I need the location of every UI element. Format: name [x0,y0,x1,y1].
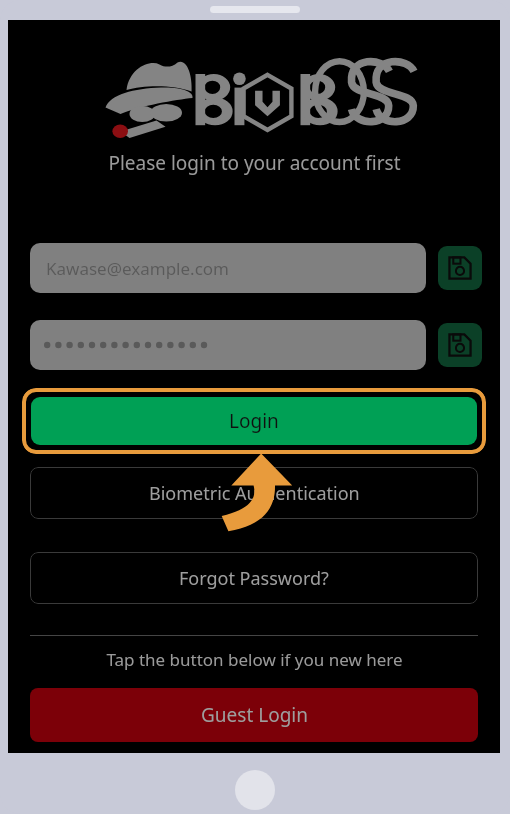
staticText: Guest Login [201,702,308,728]
button[interactable]: Biometric Authentication [30,467,478,519]
button[interactable]: Forgot Password? [30,552,478,604]
staticText: Tap the button below if you new here [106,648,403,671]
staticText: Login [229,408,279,434]
button[interactable] [30,320,426,370]
staticText: Kawase@example.com [46,257,229,280]
button[interactable]: Save credentials [438,323,482,367]
button[interactable]: Login [22,388,486,454]
button[interactable]: Guest Login [30,688,478,742]
staticText: Please login to your account first [108,150,401,176]
staticText: Biometric Authentication [149,481,360,506]
staticText: Forgot Password? [179,566,329,591]
button[interactable]: Kawase@example.com [30,243,426,293]
button[interactable]: Save credentials [438,246,482,290]
